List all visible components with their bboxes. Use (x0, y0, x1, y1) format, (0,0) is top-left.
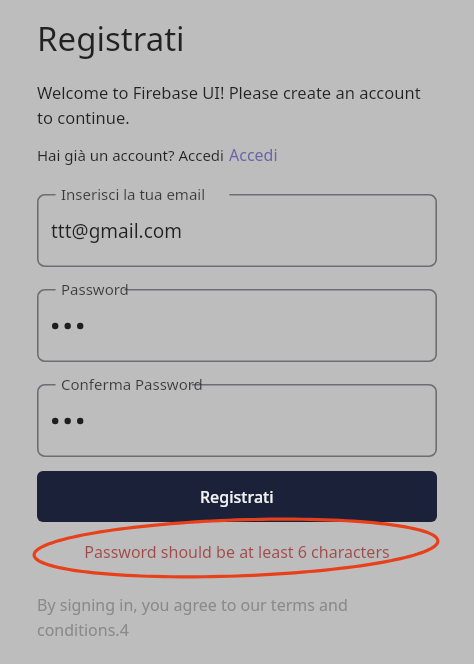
button[interactable]: Conferma Password (37, 374, 437, 457)
button[interactable]: Inserisci la tua email (37, 184, 437, 267)
staticText: ttt@gmail.com (51, 218, 183, 244)
staticText: Registrati (37, 16, 185, 61)
staticText: Inserisci la tua email (61, 184, 206, 204)
staticText: By signing in, you agree to our terms an… (37, 594, 437, 640)
staticText: Password should be at least 6 characters (37, 541, 437, 563)
staticText: Password (61, 279, 129, 299)
staticText: Welcome to Firebase UI! Please create an… (37, 81, 437, 128)
staticText: Accedi (229, 144, 278, 166)
button[interactable]: Password (37, 279, 437, 362)
staticText: Conferma Password (61, 374, 203, 394)
staticText: Hai già un account? Accedi (37, 145, 224, 165)
button[interactable]: Accedi (229, 144, 278, 166)
staticText: Registrati (200, 486, 274, 508)
button[interactable]: Registrati (37, 471, 437, 522)
